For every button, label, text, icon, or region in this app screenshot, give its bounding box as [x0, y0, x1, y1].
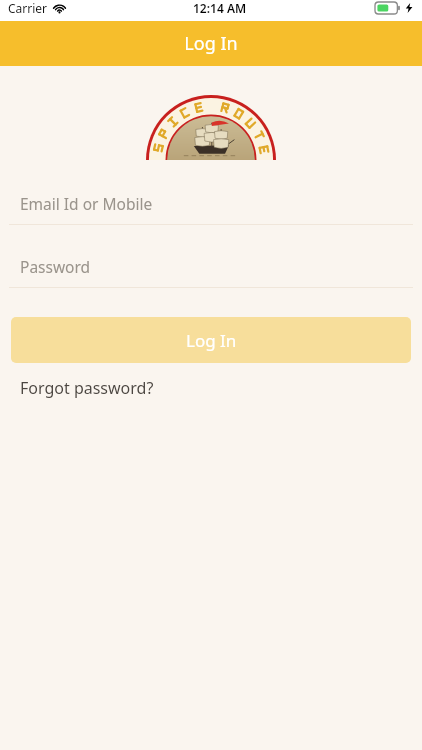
staticText: Log In	[186, 329, 237, 352]
button[interactable]: Email Id or Mobile	[0, 188, 422, 225]
button[interactable]: Password	[0, 251, 422, 288]
staticText: Forgot password?	[20, 377, 154, 399]
staticText: Log In	[184, 31, 238, 56]
button[interactable]: Log In	[11, 317, 411, 363]
staticText: Password	[20, 256, 91, 277]
staticText: 12:14 AM	[193, 0, 247, 16]
staticText: Carrier	[8, 0, 48, 16]
staticText: Email Id or Mobile	[20, 193, 153, 214]
button[interactable]: Forgot password?	[20, 377, 154, 399]
